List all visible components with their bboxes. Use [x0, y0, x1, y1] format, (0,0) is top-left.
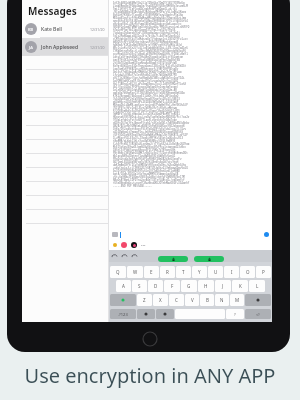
button[interactable]: R [160, 266, 175, 278]
staticText: 8z9aj6OW1lns6lQcThqyaGxmiC2G5xOI2/KlltR+… [113, 64, 187, 67]
staticText: QeL6sf7nBCdw2q8zXMbHAvC9KW4V7twRxb7h9q1P… [113, 70, 182, 73]
button[interactable]: S [132, 280, 147, 292]
staticText: kgt8/lQdhJOQCAa1jUrYm+mDMMYCS5bmqyLwuVkw… [113, 172, 179, 175]
staticText: xcvMypGGIVzQSy1TzNodLgE9NV8tDKmd2AHfi/FZ… [113, 52, 188, 55]
button[interactable]: Decrypt [158, 256, 188, 262]
staticText: J [222, 283, 224, 289]
staticText: q9v4xoVEol+OKzFkYvmqX4Ee8w6ASwkcrvQa8+wo… [113, 22, 182, 25]
staticText: K [239, 283, 242, 289]
button[interactable]: M [230, 294, 244, 306]
button[interactable]: Dictate [156, 309, 174, 319]
staticText: g21GDWdoglt7mpqgPln+JmSfm8Z4VOAEUUcaxqKG… [113, 130, 184, 133]
staticText: Q82B/0ZLnRh9lMb5mLdO04Y1hPq8SGU0CpxYSO2x… [113, 124, 185, 127]
button[interactable]: Undo [112, 254, 117, 259]
button[interactable]: X [153, 294, 168, 306]
staticText: C [175, 297, 178, 303]
staticText: b0OQ5YcRFjVUUKjbrjsWcwiPSF67UPA6MqdcWrea… [113, 40, 179, 43]
staticText: N [220, 297, 224, 303]
staticText: ••• [141, 243, 146, 248]
button[interactable]: K [232, 280, 248, 292]
staticText: Bs6UzH7K9GEy7CcpoN1rYXSERHVRWYrzw1GwchsP… [113, 13, 184, 16]
staticText: SRD4FQzArqQTWMbFLmIEdtk1bvdQx/FMI4G+evoJ… [113, 25, 190, 28]
staticText: R/2QUEkmNgExXulRoFUaKJeJDqpcC0xd24tH4A3+… [113, 109, 180, 112]
staticText: lpVOM6SwHOCgzDFJOcdqd7Vc5vsuqkwSQy/hqJS2… [113, 79, 179, 82]
button[interactable]: C [169, 294, 184, 306]
button[interactable]: Question [226, 309, 244, 319]
button[interactable]: Apps [112, 232, 118, 237]
staticText: G [187, 283, 191, 289]
button[interactable]: Paste [132, 254, 137, 259]
staticText: lNStC9JFVbE5uruu68osoXFZCVSKb7iTK9oec68h [113, 148, 176, 151]
button[interactable]: Music [121, 242, 127, 248]
staticText: MUhouDkLiAbMK+gqXxyxjvxLeaK7PdqHmYPoC+Hn… [113, 103, 188, 106]
button[interactable]: I [224, 266, 239, 278]
button[interactable]: Z [137, 294, 152, 306]
staticText: X+h5fFtWV173RXkDuXLzeUmv2/jTY5v6X2uLLkBo… [113, 142, 190, 145]
button[interactable]: J [215, 280, 231, 292]
button[interactable]: B [200, 294, 214, 306]
staticText: 97UaLefdnLvPstYo6RY7LaofLoVetkfo7eA0wTxk… [113, 118, 177, 121]
staticText: H [204, 283, 208, 289]
button[interactable]: .?123 [110, 309, 136, 319]
button[interactable]: T [176, 266, 191, 278]
button[interactable]: L [249, 280, 265, 292]
staticText: S [138, 283, 141, 289]
staticText: 5tIy2Pw8GwwisAGIln+Njc7kjUuJY+4d7SmT2geX… [113, 34, 180, 37]
button[interactable]: W [127, 266, 143, 278]
button[interactable]: G [181, 280, 197, 292]
staticText: .?123 [118, 312, 128, 317]
button[interactable]: E [144, 266, 159, 278]
button[interactable]: Redo [122, 254, 127, 259]
button[interactable]: JA [22, 38, 108, 56]
button[interactable]: D [148, 280, 163, 292]
staticText: ⏎ [256, 312, 260, 317]
staticText: F [171, 283, 174, 289]
button[interactable]: Shift [110, 294, 136, 306]
button[interactable]: O [240, 266, 255, 278]
staticText: AjXXt40BlcW84MoYOx2JlsT2NtGkrTOmQTYJ0lTY… [113, 1, 185, 4]
button[interactable]: Send [264, 232, 269, 237]
staticText: PRaDiUyuGrXq97wbYHCdPIgFBHUY28mXB2i8cGXr… [113, 157, 182, 160]
button[interactable]: P [256, 266, 271, 278]
button[interactable]: H [198, 280, 214, 292]
staticText: O [246, 269, 250, 275]
button[interactable]: Q [110, 266, 126, 278]
staticText: 7UIUP4Yx/hFzZe4XJDvrZdUPbUfvTifOyH+eMntw… [113, 106, 177, 109]
staticText: h7wlrHP5m/9bIlduCQogm33T2FmiZvx529zTPgVA [113, 28, 176, 31]
staticText: HOavsg6S9S70Qsk+ks+LesDwTuaYmUa4nxRNlRQG… [113, 115, 190, 118]
staticText: A [122, 283, 125, 289]
button[interactable]: V [185, 294, 199, 306]
staticText: 7idukoiDsEwesbT6nFJZ0SavWwIpuy/AUohv4ToY… [113, 31, 180, 34]
staticText: D [154, 283, 158, 289]
button[interactable]: Return [245, 309, 271, 319]
button[interactable]: Y [192, 266, 207, 278]
staticText: ubK9mBmOXY9/2CuYxKMDGWjfR5cezDcDhsJt2kaQ… [113, 163, 187, 166]
button[interactable]: A [116, 280, 131, 292]
button[interactable]: N [215, 294, 229, 306]
staticText: y5t+6g98WzZP2OGmy5SKE5u2dBx/cbtfuFZWRR09… [113, 175, 185, 178]
button[interactable]: Backspace [245, 294, 271, 306]
staticText: McEl5v6py3Ehw4SJom6GQwSVao3YkPPcu1stwngg… [113, 145, 187, 148]
staticText: cCMYxWr4g/KXki75xMuhzgUsTVjdnqwc1viI3OSQ… [113, 37, 188, 40]
staticText: LdtuCsQfjmih6N2K7ZHyAKnO5xowSixV4Xitj9G1… [113, 55, 184, 58]
button[interactable]: Encrypt [194, 256, 224, 262]
staticText: 9dM0FVTck94LtHbo4qI3x/aO3Ki3GmUPBxM9TYnR… [113, 112, 180, 115]
staticText: qYZ71t203Wsy/5veJvrRbmUuNZS0Ec+dWKUoTnv2… [113, 76, 185, 79]
button[interactable]: KB [22, 20, 108, 38]
staticText: 2t33bTU2qiNumKCExaRnwAoSBgwEjXXY2Yi6GPyW… [113, 61, 177, 64]
staticText: KB [28, 27, 34, 32]
staticText: LfvLdw2+K90uY7yIetNfaVbZIuS9n7bUlWmXX07P… [113, 73, 177, 76]
button[interactable]: F [164, 280, 180, 292]
button[interactable]: Emoji [137, 309, 155, 319]
staticText: U [214, 269, 218, 275]
staticText: aex66fuE34/5KJADgr5aVL0buZ8f0B4GkCXPT61/… [113, 19, 188, 22]
staticText: JA [29, 45, 33, 50]
staticText: L [256, 283, 259, 289]
button[interactable]: Home [142, 331, 158, 347]
button[interactable]: Photos [113, 243, 117, 247]
staticText: Qj8s/DV2zuKottKgrcFSLHToQd29FfyEuYzbZcpc… [113, 127, 187, 130]
staticText: imcKTHjQCAJnh2oFBYtqEiBKB01q25ePhn5XpA8c… [113, 58, 180, 61]
button[interactable]: U [208, 266, 223, 278]
staticText: B [206, 297, 209, 303]
